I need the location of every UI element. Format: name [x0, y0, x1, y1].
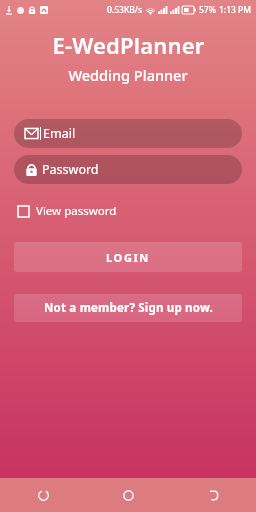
button[interactable]: Email: [14, 119, 242, 148]
button[interactable]: LOGIN: [14, 242, 242, 272]
button[interactable]: Home: [86, 478, 171, 512]
staticText: 0.53KB/s: [107, 4, 143, 16]
staticText: View password: [36, 203, 117, 219]
staticText: Password: [42, 161, 99, 178]
staticText: Wedding Planner: [68, 65, 188, 85]
staticText: Not a member? Sign up now.: [44, 300, 213, 316]
button[interactable]: Not a member? Sign up now.: [14, 294, 242, 322]
staticText: Email: [43, 125, 76, 142]
button[interactable]: View password: [16, 200, 119, 222]
staticText: E-WedPlanner: [52, 30, 205, 60]
button[interactable]: Back: [171, 478, 256, 512]
staticText: 57%: [199, 4, 216, 16]
button[interactable]: Recents: [0, 478, 86, 512]
button[interactable]: Password: [14, 155, 242, 184]
staticText: LOGIN: [106, 250, 150, 265]
staticText: 1:13 PM: [219, 4, 252, 16]
